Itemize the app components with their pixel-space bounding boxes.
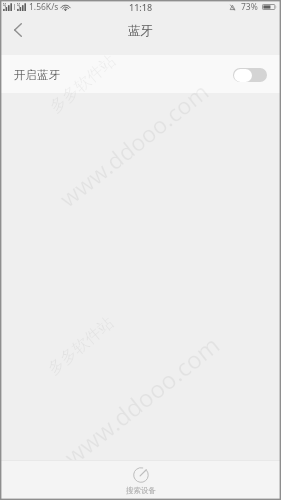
staticText: www.ddooo.com — [52, 75, 215, 213]
button[interactable]: 搜索设备 — [0, 461, 281, 500]
staticText: 11:18 — [129, 1, 153, 13]
button[interactable]: Toggle Bluetooth — [233, 68, 267, 82]
staticText: 多多软件站 — [46, 51, 120, 117]
staticText: 1.56K/s — [29, 1, 59, 13]
button[interactable]: 开启蓝牙 — [0, 55, 281, 93]
staticText: 搜索设备 — [126, 486, 156, 495]
staticText: 蓝牙 — [128, 23, 153, 39]
staticText: 开启蓝牙 — [14, 68, 60, 82]
staticText: 73% — [241, 1, 258, 13]
button[interactable]: Back — [0, 12, 36, 48]
